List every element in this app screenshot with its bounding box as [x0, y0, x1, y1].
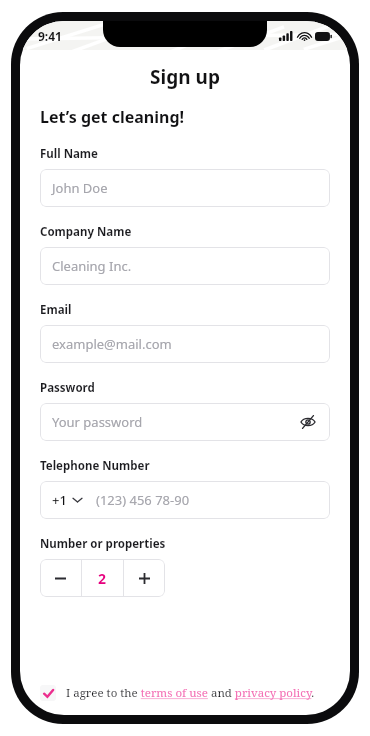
staticText: I agree to the terms of use and privacy … [66, 685, 315, 701]
staticText: Full Name [40, 146, 98, 162]
staticText: John Doe [52, 179, 108, 197]
staticText: +1 [52, 491, 67, 509]
button[interactable]: example@mail.com [40, 325, 330, 363]
staticText: Let’s get cleaning! [40, 106, 185, 128]
staticText: Telephone Number [40, 458, 150, 474]
button[interactable]: Increase [124, 559, 165, 597]
staticText: (123) 456 78-90 [96, 491, 190, 509]
staticText: Password [40, 380, 95, 396]
button[interactable]: Cleaning Inc. [40, 247, 330, 285]
button[interactable]: Decrease [40, 559, 81, 597]
button[interactable]: Show password [298, 412, 318, 432]
button[interactable]: John Doe [40, 169, 330, 207]
staticText: Sign up [150, 64, 220, 90]
staticText: 2 [98, 569, 107, 588]
staticText: Cleaning Inc. [52, 257, 132, 275]
staticText: Number or properties [40, 536, 166, 552]
staticText: Your password [52, 413, 143, 431]
button[interactable]: I agree to the terms of use and privacy … [40, 685, 330, 701]
staticText: 9:41 [38, 28, 62, 44]
staticText: Company Name [40, 224, 132, 240]
staticText: Email [40, 302, 72, 318]
button[interactable]: +1 [52, 491, 82, 509]
button[interactable]: Your password [40, 403, 330, 441]
staticText: example@mail.com [52, 335, 172, 353]
